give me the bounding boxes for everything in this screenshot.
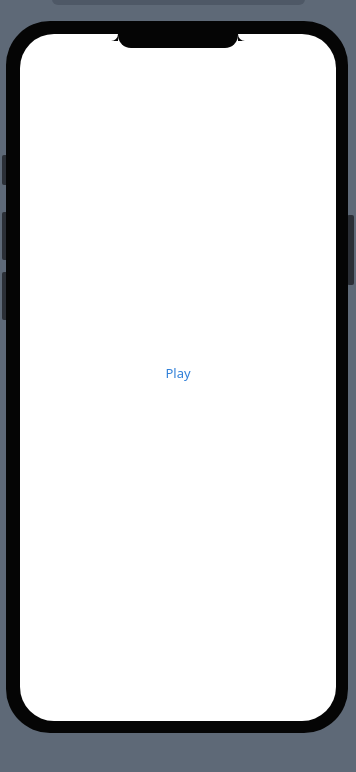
button[interactable]: Play [165, 364, 191, 382]
staticText: Play [165, 364, 191, 382]
